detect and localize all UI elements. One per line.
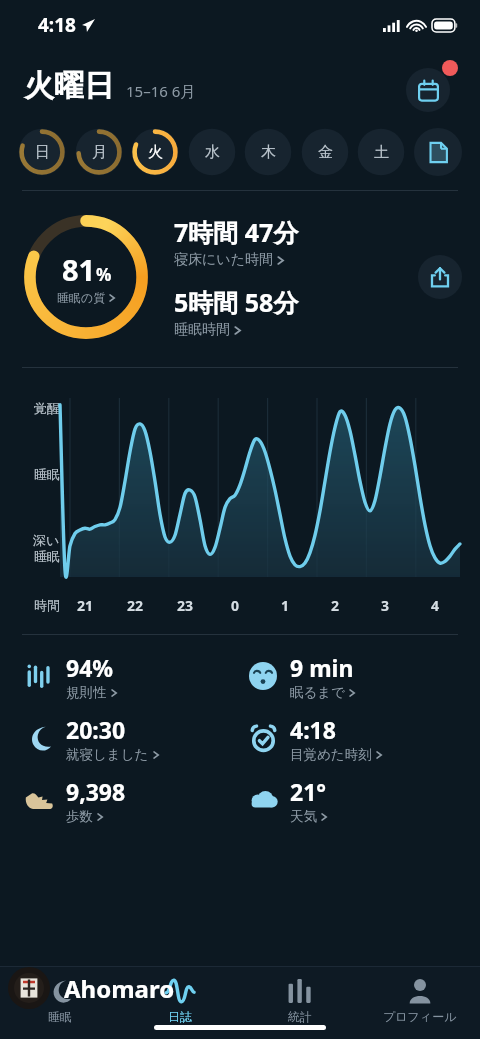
staticText: 睡眠 xyxy=(34,466,60,482)
staticText: 火 xyxy=(148,143,163,162)
button[interactable]: 7時間 47分 xyxy=(174,215,299,269)
staticText: 日誌 xyxy=(168,1009,192,1024)
staticText: 寝床にいた時間 xyxy=(174,251,273,269)
staticText: 睡眠の質 xyxy=(57,290,106,305)
button[interactable]: Notes xyxy=(414,128,462,176)
button[interactable]: 日 xyxy=(18,128,66,176)
staticText: 時間 xyxy=(34,597,60,613)
button[interactable]: 5時間 58分 xyxy=(174,285,299,339)
staticText: 月 xyxy=(92,143,107,162)
staticText: 2 xyxy=(331,596,340,615)
button[interactable]: 94% xyxy=(16,645,240,707)
staticText: 日 xyxy=(35,143,50,162)
button[interactable]: 9,398 xyxy=(16,769,240,831)
staticText: 4:18 xyxy=(290,714,336,745)
staticText: 21 xyxy=(77,596,94,615)
staticText: 統計 xyxy=(288,1009,312,1024)
staticText: 歩数 xyxy=(66,808,93,825)
staticText: 土 xyxy=(374,143,389,162)
staticText: 目覚めた時刻 xyxy=(290,746,372,763)
staticText: 睡眠 xyxy=(48,1009,72,1024)
staticText: プロフィール xyxy=(383,1009,457,1024)
button[interactable]: 木 xyxy=(244,128,292,176)
staticText: 94% xyxy=(66,652,114,683)
staticText: 火曜日 xyxy=(24,67,114,105)
button[interactable]: 火 xyxy=(131,128,179,176)
staticText: % xyxy=(96,263,112,286)
button[interactable]: 土 xyxy=(357,128,405,176)
staticText: 睡眠 xyxy=(34,548,60,564)
staticText: 1 xyxy=(281,596,290,615)
button[interactable]: 月 xyxy=(75,128,123,176)
staticText: 21° xyxy=(290,776,327,807)
staticText: 20:30 xyxy=(66,714,126,745)
button[interactable]: 日誌 xyxy=(120,967,240,1039)
button[interactable]: プロフィール xyxy=(360,967,480,1039)
button[interactable]: 21° xyxy=(240,769,464,831)
staticText: 81 xyxy=(62,250,96,289)
button[interactable]: 金 xyxy=(301,128,349,176)
button[interactable]: 睡眠 xyxy=(0,967,120,1039)
button[interactable]: 81 xyxy=(18,209,154,345)
staticText: 規則性 xyxy=(66,684,107,701)
staticText: 就寝しました xyxy=(66,746,149,763)
staticText: 22 xyxy=(127,596,144,615)
button[interactable]: 20:30 xyxy=(16,707,240,769)
staticText: 覚醒 xyxy=(34,400,60,416)
staticText: 深い xyxy=(33,532,60,548)
button[interactable]: 水 xyxy=(188,128,236,176)
staticText: 15–16 6月 xyxy=(126,81,196,101)
button[interactable]: 統計 xyxy=(240,967,360,1039)
staticText: 3 xyxy=(381,596,390,615)
staticText: 4 xyxy=(431,596,440,615)
staticText: 水 xyxy=(205,143,220,162)
button[interactable]: 9 min xyxy=(240,645,464,707)
staticText: 金 xyxy=(318,143,333,162)
staticText: 木 xyxy=(261,143,276,162)
staticText: 7時間 47分 xyxy=(174,215,299,249)
staticText: 9,398 xyxy=(66,776,126,807)
staticText: 睡眠時間 xyxy=(174,321,230,339)
button[interactable]: Share xyxy=(418,255,462,299)
staticText: 眠るまで xyxy=(290,684,345,701)
staticText: 4:18 xyxy=(38,12,76,38)
button[interactable]: Calendar xyxy=(406,68,450,112)
staticText: 5時間 58分 xyxy=(174,285,299,319)
staticText: 0 xyxy=(231,596,240,615)
staticText: 9 min xyxy=(290,652,354,683)
staticText: Ahomaro xyxy=(64,972,175,1005)
staticText: 天気 xyxy=(290,808,317,825)
staticText: 23 xyxy=(177,596,194,615)
button[interactable]: 4:18 xyxy=(240,707,464,769)
